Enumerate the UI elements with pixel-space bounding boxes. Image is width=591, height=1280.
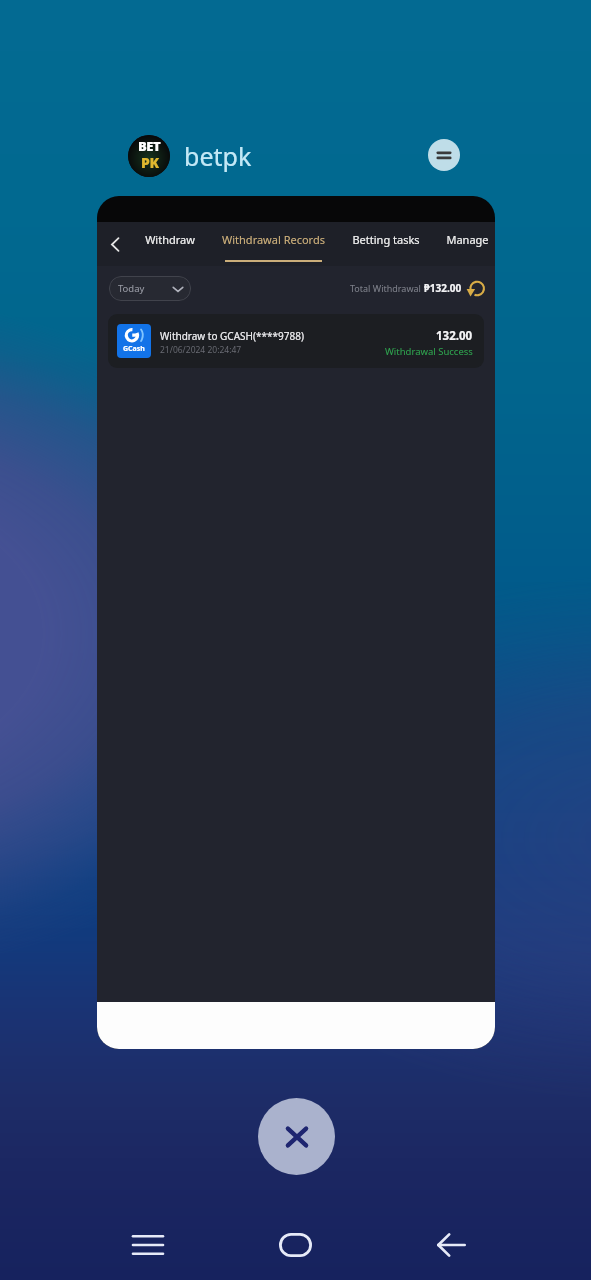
button[interactable]: Withdraw xyxy=(140,222,200,266)
staticText: Today xyxy=(118,282,145,295)
button[interactable]: Back xyxy=(423,1217,479,1273)
button[interactable]: Menu xyxy=(428,139,460,171)
staticText: Withdrawal Success xyxy=(385,345,473,358)
staticText: Total Withdrawal xyxy=(350,282,421,294)
button[interactable]: Recent apps xyxy=(120,1217,176,1273)
staticText: Withdrawal Records xyxy=(222,232,325,247)
button[interactable]: Manage xyxy=(443,222,491,266)
button[interactable]: Back xyxy=(101,230,129,258)
staticText: Manage xyxy=(446,232,489,247)
staticText: PK xyxy=(141,153,159,172)
staticText: Betting tasks xyxy=(352,232,420,247)
button[interactable]: Withdrawal Records xyxy=(213,222,334,266)
button[interactable]: betpk logo xyxy=(128,135,170,177)
button[interactable]: Betting tasks xyxy=(340,222,431,266)
staticText: 21/06/2024 20:24:47 xyxy=(160,344,242,356)
staticText: BET xyxy=(138,137,161,155)
staticText: ₱132.00 xyxy=(424,281,462,295)
staticText: 132.00 xyxy=(436,328,473,344)
staticText: GCash xyxy=(123,344,145,354)
button[interactable]: Today xyxy=(109,276,191,301)
button[interactable]: Home xyxy=(267,1217,323,1273)
button[interactable]: Refresh xyxy=(466,278,486,298)
staticText: Withdraw xyxy=(145,232,195,247)
button[interactable]: Close all xyxy=(258,1098,335,1175)
staticText: betpk xyxy=(184,139,252,173)
button[interactable]: GCash xyxy=(108,314,484,368)
staticText: Withdraw to GCASH(****9788) xyxy=(160,329,304,343)
